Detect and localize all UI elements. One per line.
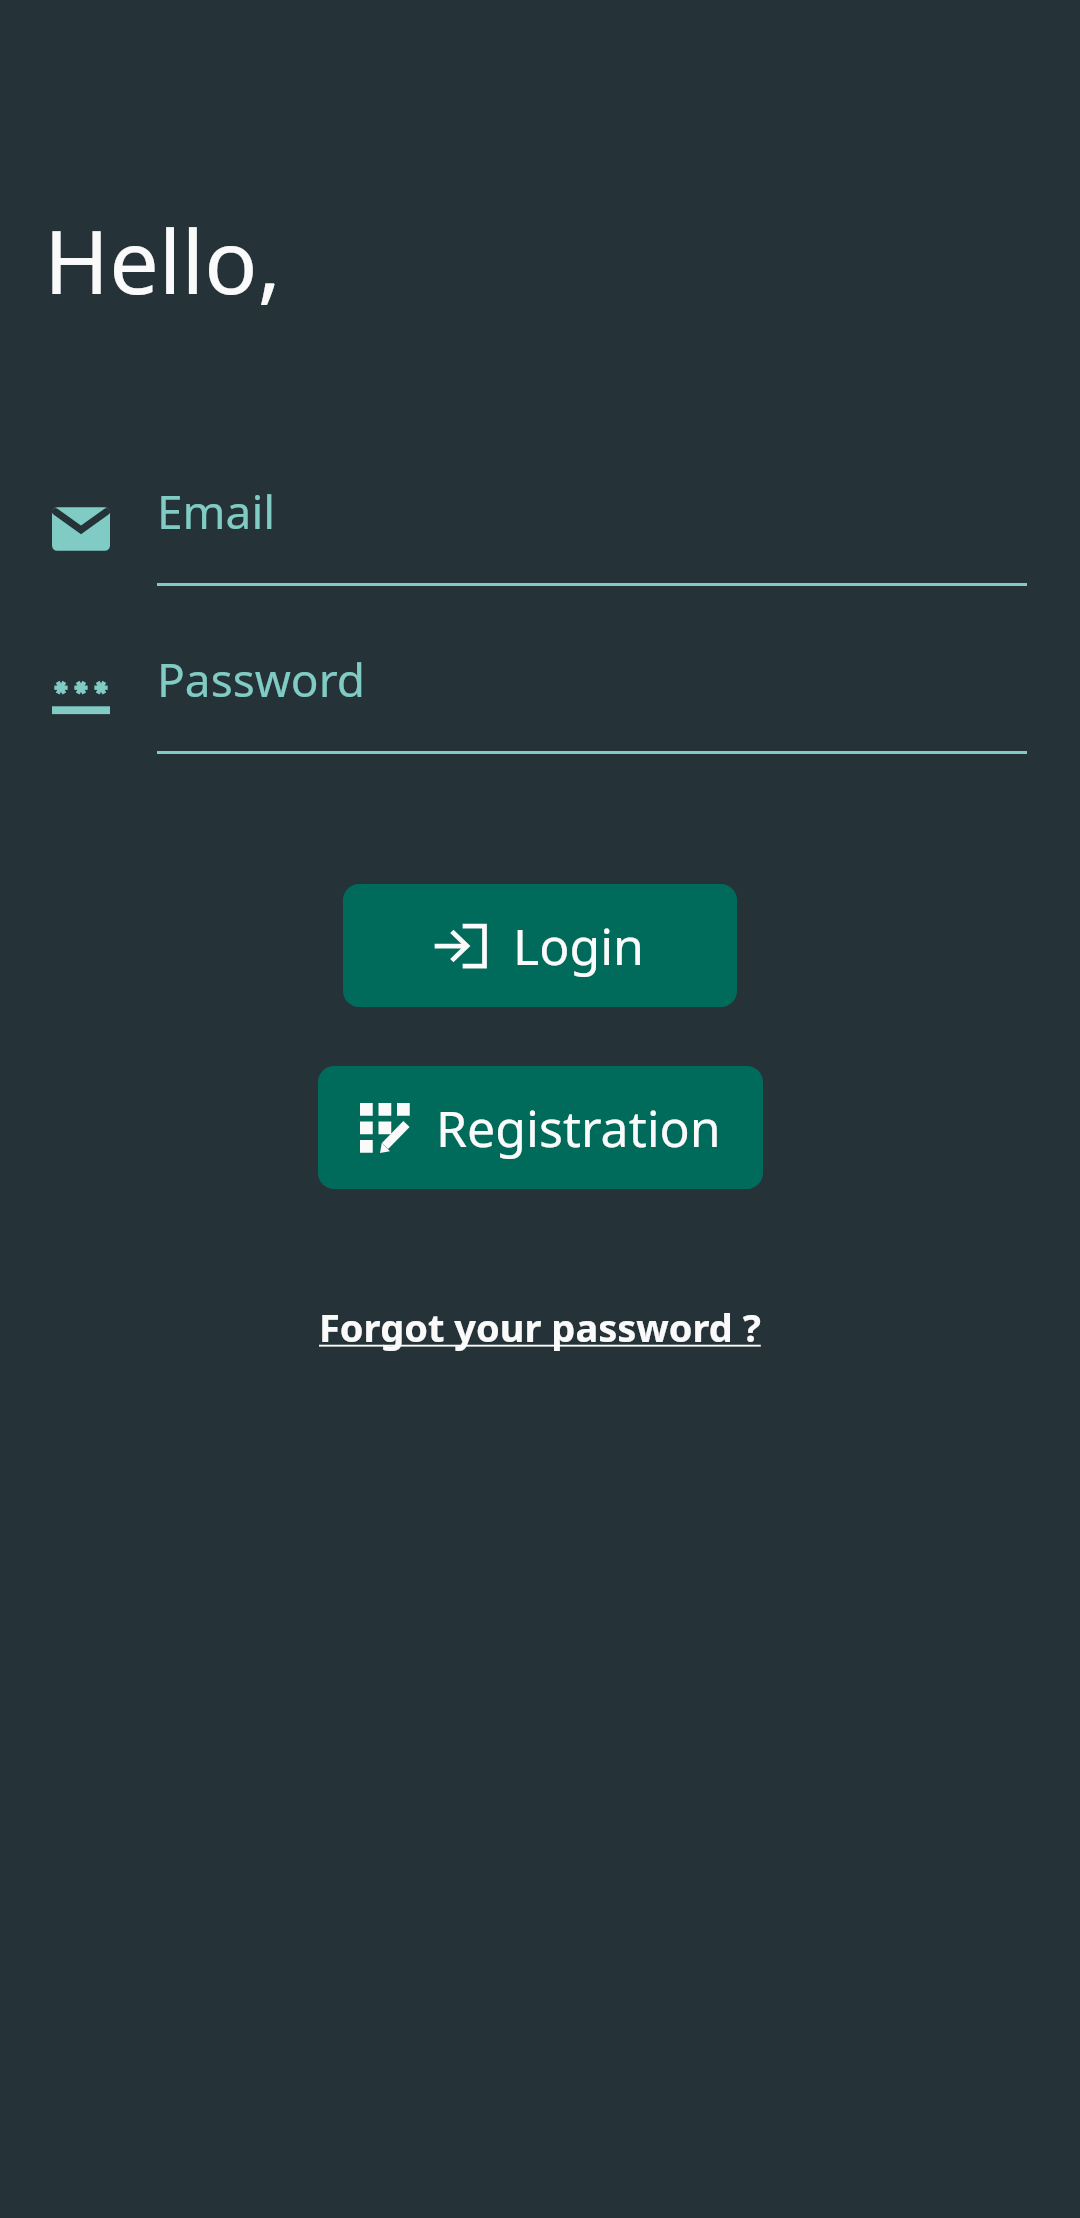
button[interactable]: Password <box>0 648 1080 754</box>
staticText: Login <box>513 912 644 980</box>
staticText: Registration <box>436 1094 721 1162</box>
button[interactable]: Email <box>0 480 1080 586</box>
button[interactable]: Registration <box>318 1066 763 1189</box>
button[interactable]: Login <box>343 884 737 1007</box>
staticText: Email <box>157 480 276 543</box>
other: Password icon <box>52 668 110 726</box>
button[interactable]: Forgot your password ? <box>309 1293 771 1361</box>
staticText: Hello, <box>44 200 282 320</box>
staticText: Password <box>157 648 366 711</box>
other: Email icon <box>52 500 110 558</box>
